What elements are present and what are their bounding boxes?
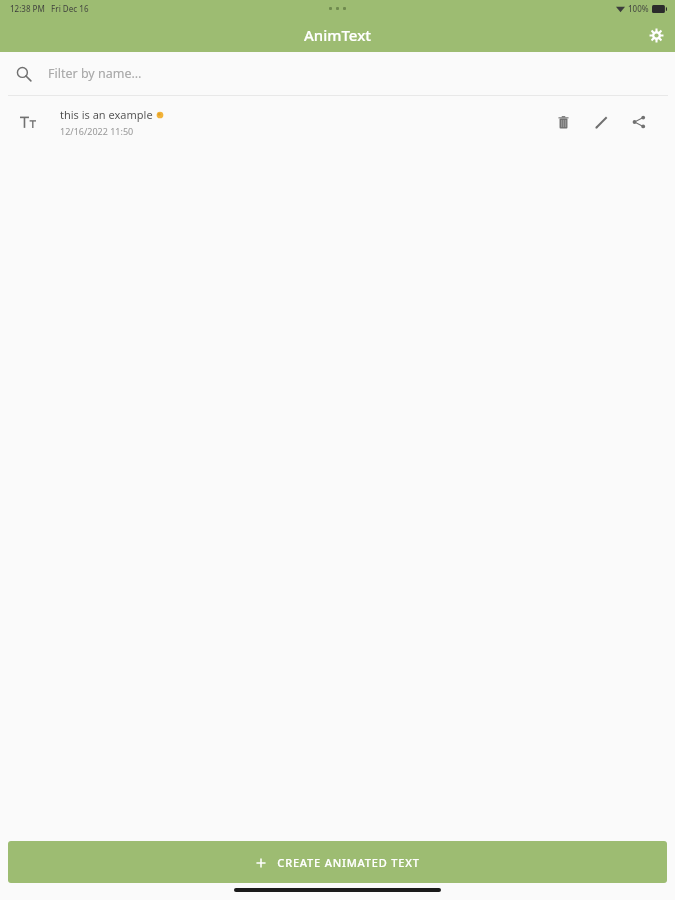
button[interactable]: this is an example (0, 96, 675, 148)
staticText: Filter by name… (48, 65, 142, 82)
button[interactable]: CREATE ANIMATED TEXT (8, 841, 667, 883)
button[interactable]: Delete (551, 110, 575, 134)
staticText: AnimText (304, 25, 372, 45)
staticText: 100% (628, 3, 649, 14)
staticText: 12/16/2022 11:50 (60, 125, 134, 137)
button[interactable]: Share (627, 110, 651, 134)
button[interactable]: Settings (641, 20, 671, 50)
staticText: this is an example (60, 107, 156, 122)
staticText: CREATE ANIMATED TEXT (277, 855, 420, 870)
button[interactable]: Edit (589, 110, 613, 134)
staticText: 12:38 PM Fri Dec 16 (10, 3, 89, 14)
button[interactable]: Filter by name… (0, 52, 675, 95)
